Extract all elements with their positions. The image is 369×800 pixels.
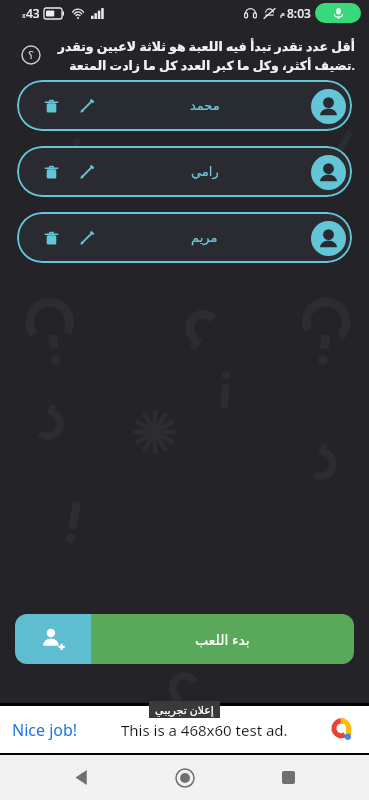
staticText: This is a 468x60 test ad. (121, 720, 288, 740)
button[interactable]: Delete player (37, 224, 65, 252)
staticText: 43 (26, 5, 40, 21)
button[interactable]: Edit player name (73, 92, 101, 120)
button[interactable]: بدء اللعب (91, 614, 354, 664)
button[interactable]: Delete player (37, 92, 65, 120)
staticText: x (22, 11, 26, 21)
staticText: ؟ (28, 49, 34, 62)
button[interactable]: Home (162, 755, 208, 800)
button[interactable]: Recent apps (265, 755, 311, 800)
staticText: مريم (191, 230, 218, 245)
button[interactable]: Delete player (17, 80, 352, 131)
staticText: رامي (191, 164, 219, 179)
button[interactable]: Nice job! (0, 706, 369, 753)
staticText: 8:03 (287, 5, 311, 21)
button[interactable]: Delete player (17, 146, 352, 197)
button[interactable]: Delete player (17, 212, 352, 263)
button[interactable]: Edit player name (73, 224, 101, 252)
staticText: بدء اللعب (195, 630, 250, 649)
button[interactable]: Help (14, 38, 48, 72)
button[interactable]: Delete player (37, 158, 65, 186)
staticText: م (280, 9, 285, 18)
button[interactable]: Back (58, 755, 104, 800)
staticText: أقل عدد تقدر تبدأ فيه اللعبة هو ثلاثة لا… (56, 38, 355, 74)
button[interactable]: Edit player name (73, 158, 101, 186)
other: Microphone active (315, 3, 361, 23)
staticText: Nice job! (12, 719, 78, 741)
staticText: إعلان تجريبي (155, 702, 214, 717)
button[interactable]: Add player (15, 614, 91, 664)
staticText: محمد (190, 98, 220, 113)
